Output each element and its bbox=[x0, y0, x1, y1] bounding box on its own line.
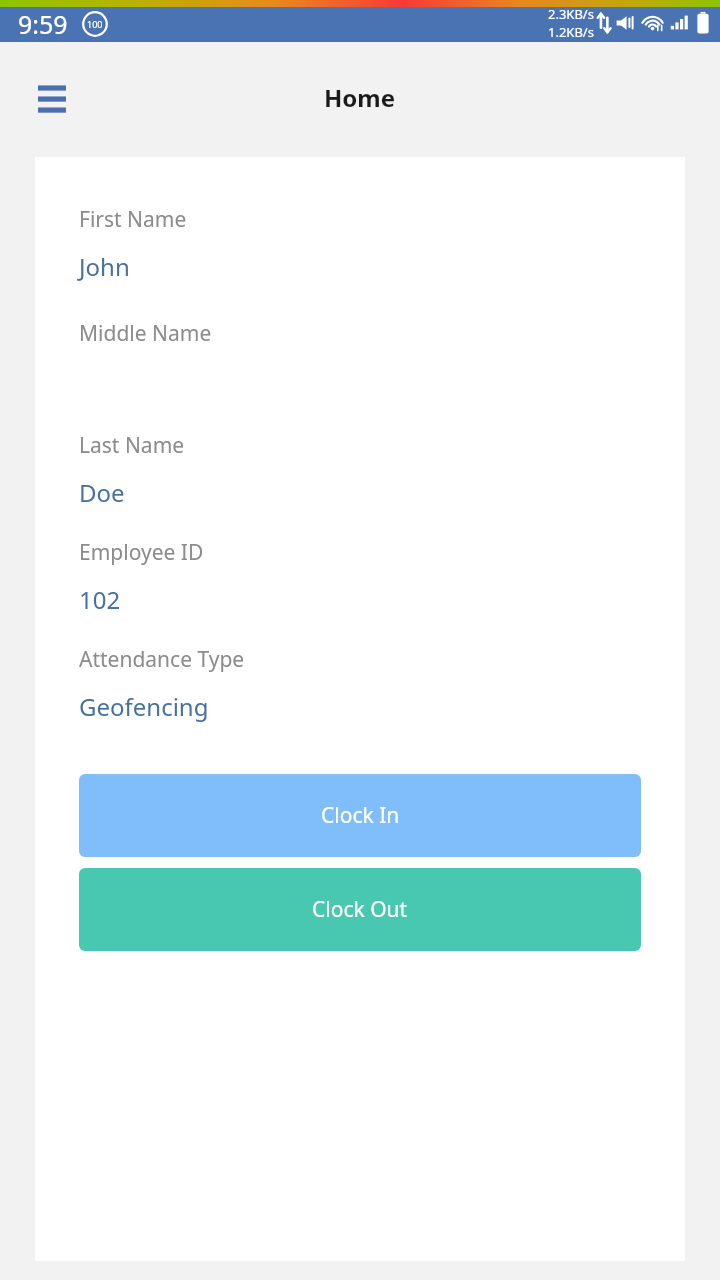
staticText: 1.2KB/s bbox=[548, 23, 594, 41]
staticText: Clock Out bbox=[312, 895, 408, 924]
staticText: First Name bbox=[79, 205, 187, 234]
staticText: Geofencing bbox=[79, 690, 209, 723]
staticText: 100 bbox=[87, 18, 103, 30]
button[interactable]: Open navigation menu bbox=[30, 78, 74, 122]
staticText: Middle Name bbox=[79, 319, 212, 348]
staticText: Doe bbox=[79, 476, 125, 509]
staticText: Last Name bbox=[79, 431, 185, 460]
staticText: 9:59 bbox=[18, 7, 68, 41]
staticText: Clock In bbox=[321, 801, 400, 830]
staticText: Home bbox=[324, 81, 396, 114]
button[interactable]: Clock Out bbox=[79, 868, 641, 951]
staticText: 2.3KB/s bbox=[548, 5, 594, 23]
staticText: Attendance Type bbox=[79, 645, 245, 674]
staticText: John bbox=[79, 250, 130, 283]
staticText: 102 bbox=[79, 583, 121, 616]
button[interactable]: Clock In bbox=[79, 774, 641, 857]
staticText: Employee ID bbox=[79, 538, 204, 567]
